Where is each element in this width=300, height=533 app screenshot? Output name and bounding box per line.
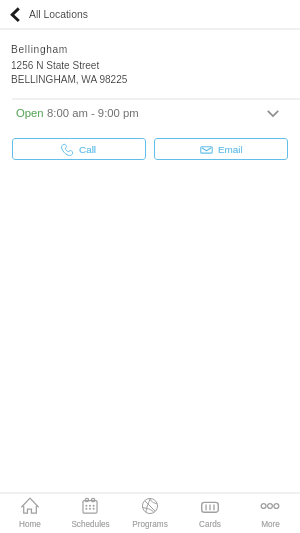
staticText: Call [79,144,97,155]
button[interactable]: Home [0,494,60,529]
staticText: Open [16,107,47,120]
staticText: 8:00 am - 9:00 pm [47,107,139,120]
button[interactable]: Cards [180,494,240,529]
button[interactable]: Open [0,99,300,127]
staticText: More [261,520,280,529]
staticText: Bellingham [11,44,69,55]
staticText: BELLINGHAM, WA 98225 [11,74,128,85]
button[interactable]: Schedules [60,494,120,529]
button[interactable]: More [240,494,300,529]
staticText: All Locations [29,9,88,21]
staticText: Programs [132,520,168,529]
button[interactable]: Programs [120,494,180,529]
staticText: Home [19,520,41,529]
button[interactable]: Call [12,138,146,160]
staticText: Schedules [71,520,110,529]
button[interactable]: Email [154,138,288,160]
button[interactable]: Back [2,1,28,27]
staticText: 1256 N State Street [11,60,100,71]
staticText: Email [218,144,243,155]
staticText: Cards [199,520,221,529]
